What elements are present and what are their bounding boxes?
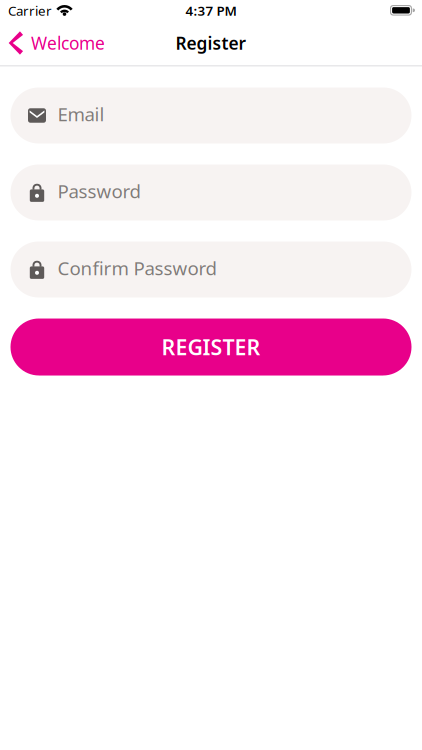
button[interactable]: Email bbox=[10, 87, 411, 143]
button[interactable]: REGISTER bbox=[10, 318, 411, 375]
staticText: Confirm Password bbox=[57, 256, 216, 280]
staticText: Email bbox=[57, 102, 104, 126]
staticText: REGISTER bbox=[161, 333, 260, 361]
button[interactable]: Confirm Password bbox=[10, 241, 411, 297]
button[interactable]: Password bbox=[10, 164, 411, 220]
staticText: Register bbox=[175, 31, 246, 54]
staticText: Password bbox=[57, 179, 140, 203]
staticText: Welcome bbox=[31, 31, 105, 54]
button[interactable]: Welcome bbox=[0, 21, 115, 65]
staticText: Carrier bbox=[8, 2, 52, 19]
staticText: 4:37 PM bbox=[185, 2, 236, 19]
